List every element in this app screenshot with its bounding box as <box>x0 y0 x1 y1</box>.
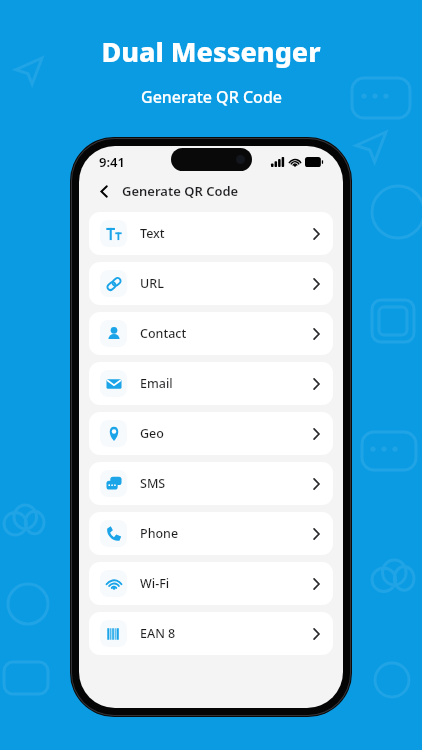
staticText: Text <box>140 225 165 242</box>
staticText: URL <box>140 275 164 292</box>
button[interactable]: Wi-Fi <box>89 562 333 605</box>
staticText: Dual Messenger <box>101 33 321 70</box>
button[interactable]: Text <box>89 212 333 255</box>
staticText: Contact <box>140 325 187 342</box>
staticText: Geo <box>140 425 164 442</box>
staticText: Email <box>140 375 173 392</box>
staticText: Phone <box>140 525 179 542</box>
button[interactable]: Geo <box>89 412 333 455</box>
staticText: SMS <box>140 475 166 492</box>
staticText: Generate QR Code <box>141 86 282 108</box>
button[interactable]: Phone <box>89 512 333 555</box>
staticText: Wi-Fi <box>140 575 170 592</box>
button[interactable]: SMS <box>89 462 333 505</box>
button[interactable]: Email <box>89 362 333 405</box>
staticText: Generate QR Code <box>122 182 239 200</box>
staticText: 9:41 <box>99 153 125 171</box>
button[interactable]: Contact <box>89 312 333 355</box>
button[interactable]: URL <box>89 262 333 305</box>
button[interactable]: EAN 8 <box>89 612 333 655</box>
staticText: EAN 8 <box>140 625 176 642</box>
button[interactable]: Back <box>93 180 115 202</box>
